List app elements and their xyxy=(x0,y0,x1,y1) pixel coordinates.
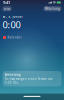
staticText: 9:41 xyxy=(3,0,10,5)
staticText: Erinnerung xyxy=(5,73,21,76)
staticText: Du hast morgen einen Termin um 9:00 Uhr. xyxy=(5,77,52,84)
staticText: Sa., 4. Januar xyxy=(2,15,22,18)
button[interactable]: Erinnerung xyxy=(2,71,61,86)
staticText: Jetzt xyxy=(4,7,10,10)
button[interactable]: Mitteilung xyxy=(43,6,61,11)
button[interactable]: Jetzt xyxy=(2,6,12,11)
staticText: Kalender xyxy=(7,36,21,39)
staticText: 0:00 xyxy=(2,18,20,31)
staticText: Mitteilung xyxy=(45,7,60,10)
